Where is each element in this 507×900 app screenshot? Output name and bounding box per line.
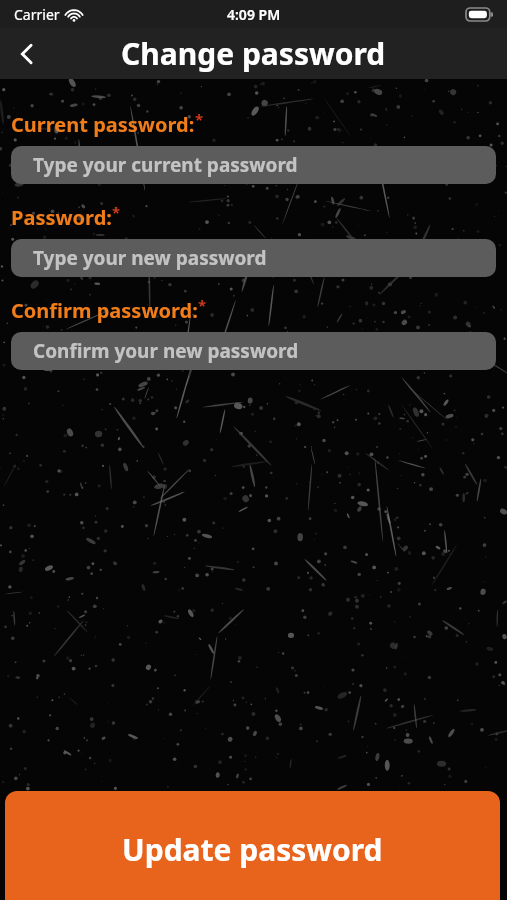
staticText: Password: bbox=[11, 204, 112, 231]
staticText: Update password bbox=[122, 829, 383, 870]
button[interactable]: Type your new password bbox=[11, 239, 496, 277]
staticText: * bbox=[195, 109, 204, 129]
staticText: Current password: bbox=[11, 111, 195, 138]
staticText: * bbox=[198, 295, 207, 315]
button[interactable]: Confirm your new password bbox=[11, 332, 496, 370]
staticText: Carrier bbox=[14, 5, 60, 24]
button[interactable]: Update password bbox=[5, 791, 500, 900]
staticText: * bbox=[112, 202, 121, 222]
button[interactable]: Type your current password bbox=[11, 146, 496, 184]
staticText: Type your current password bbox=[33, 152, 298, 178]
staticText: 4:09 PM bbox=[227, 5, 281, 24]
staticText: Type your new password bbox=[33, 245, 267, 271]
staticText: Confirm password: bbox=[11, 297, 198, 324]
button[interactable]: Back bbox=[0, 28, 52, 79]
staticText: Change password bbox=[121, 33, 386, 74]
staticText: Confirm your new password bbox=[33, 338, 299, 364]
